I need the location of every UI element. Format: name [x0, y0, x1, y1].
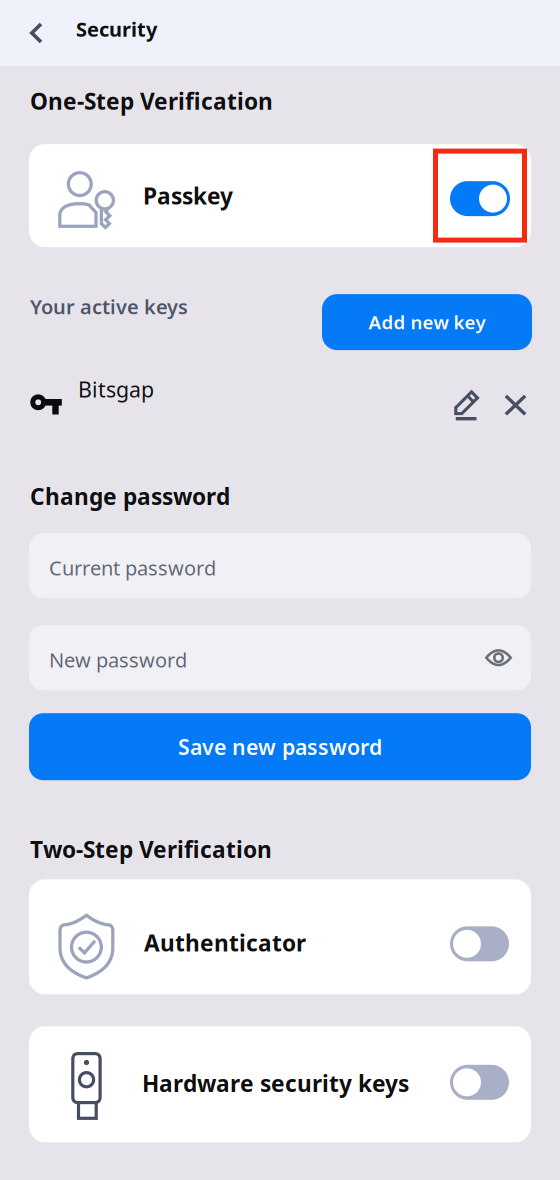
staticText: Hardware security keys: [142, 1068, 409, 1098]
staticText: Two-Step Verification: [30, 834, 272, 864]
staticText: Save new password: [178, 732, 382, 761]
staticText: Your active keys: [30, 293, 188, 320]
button[interactable]: Passkey: [432, 149, 526, 243]
staticText: Current password: [49, 554, 216, 581]
staticText: Bitsgap: [78, 375, 154, 403]
button[interactable]: Save new password: [29, 713, 531, 780]
staticText: Add new key: [368, 310, 485, 334]
staticText: Passkey: [143, 181, 233, 211]
button[interactable]: Hardware security keys: [450, 1045, 531, 1124]
staticText: Security: [76, 16, 157, 42]
staticText: Authenticator: [144, 928, 306, 958]
staticText: Change password: [30, 481, 230, 511]
staticText: New password: [49, 646, 187, 673]
button[interactable]: Delete key: [490, 382, 541, 428]
button[interactable]: Show password: [485, 626, 531, 690]
button[interactable]: Edit key: [440, 382, 493, 429]
button[interactable]: Authenticator: [450, 897, 531, 976]
button[interactable]: Add new key: [322, 294, 532, 350]
staticText: One-Step Verification: [30, 86, 273, 116]
button[interactable]: Back: [0, 1, 76, 65]
